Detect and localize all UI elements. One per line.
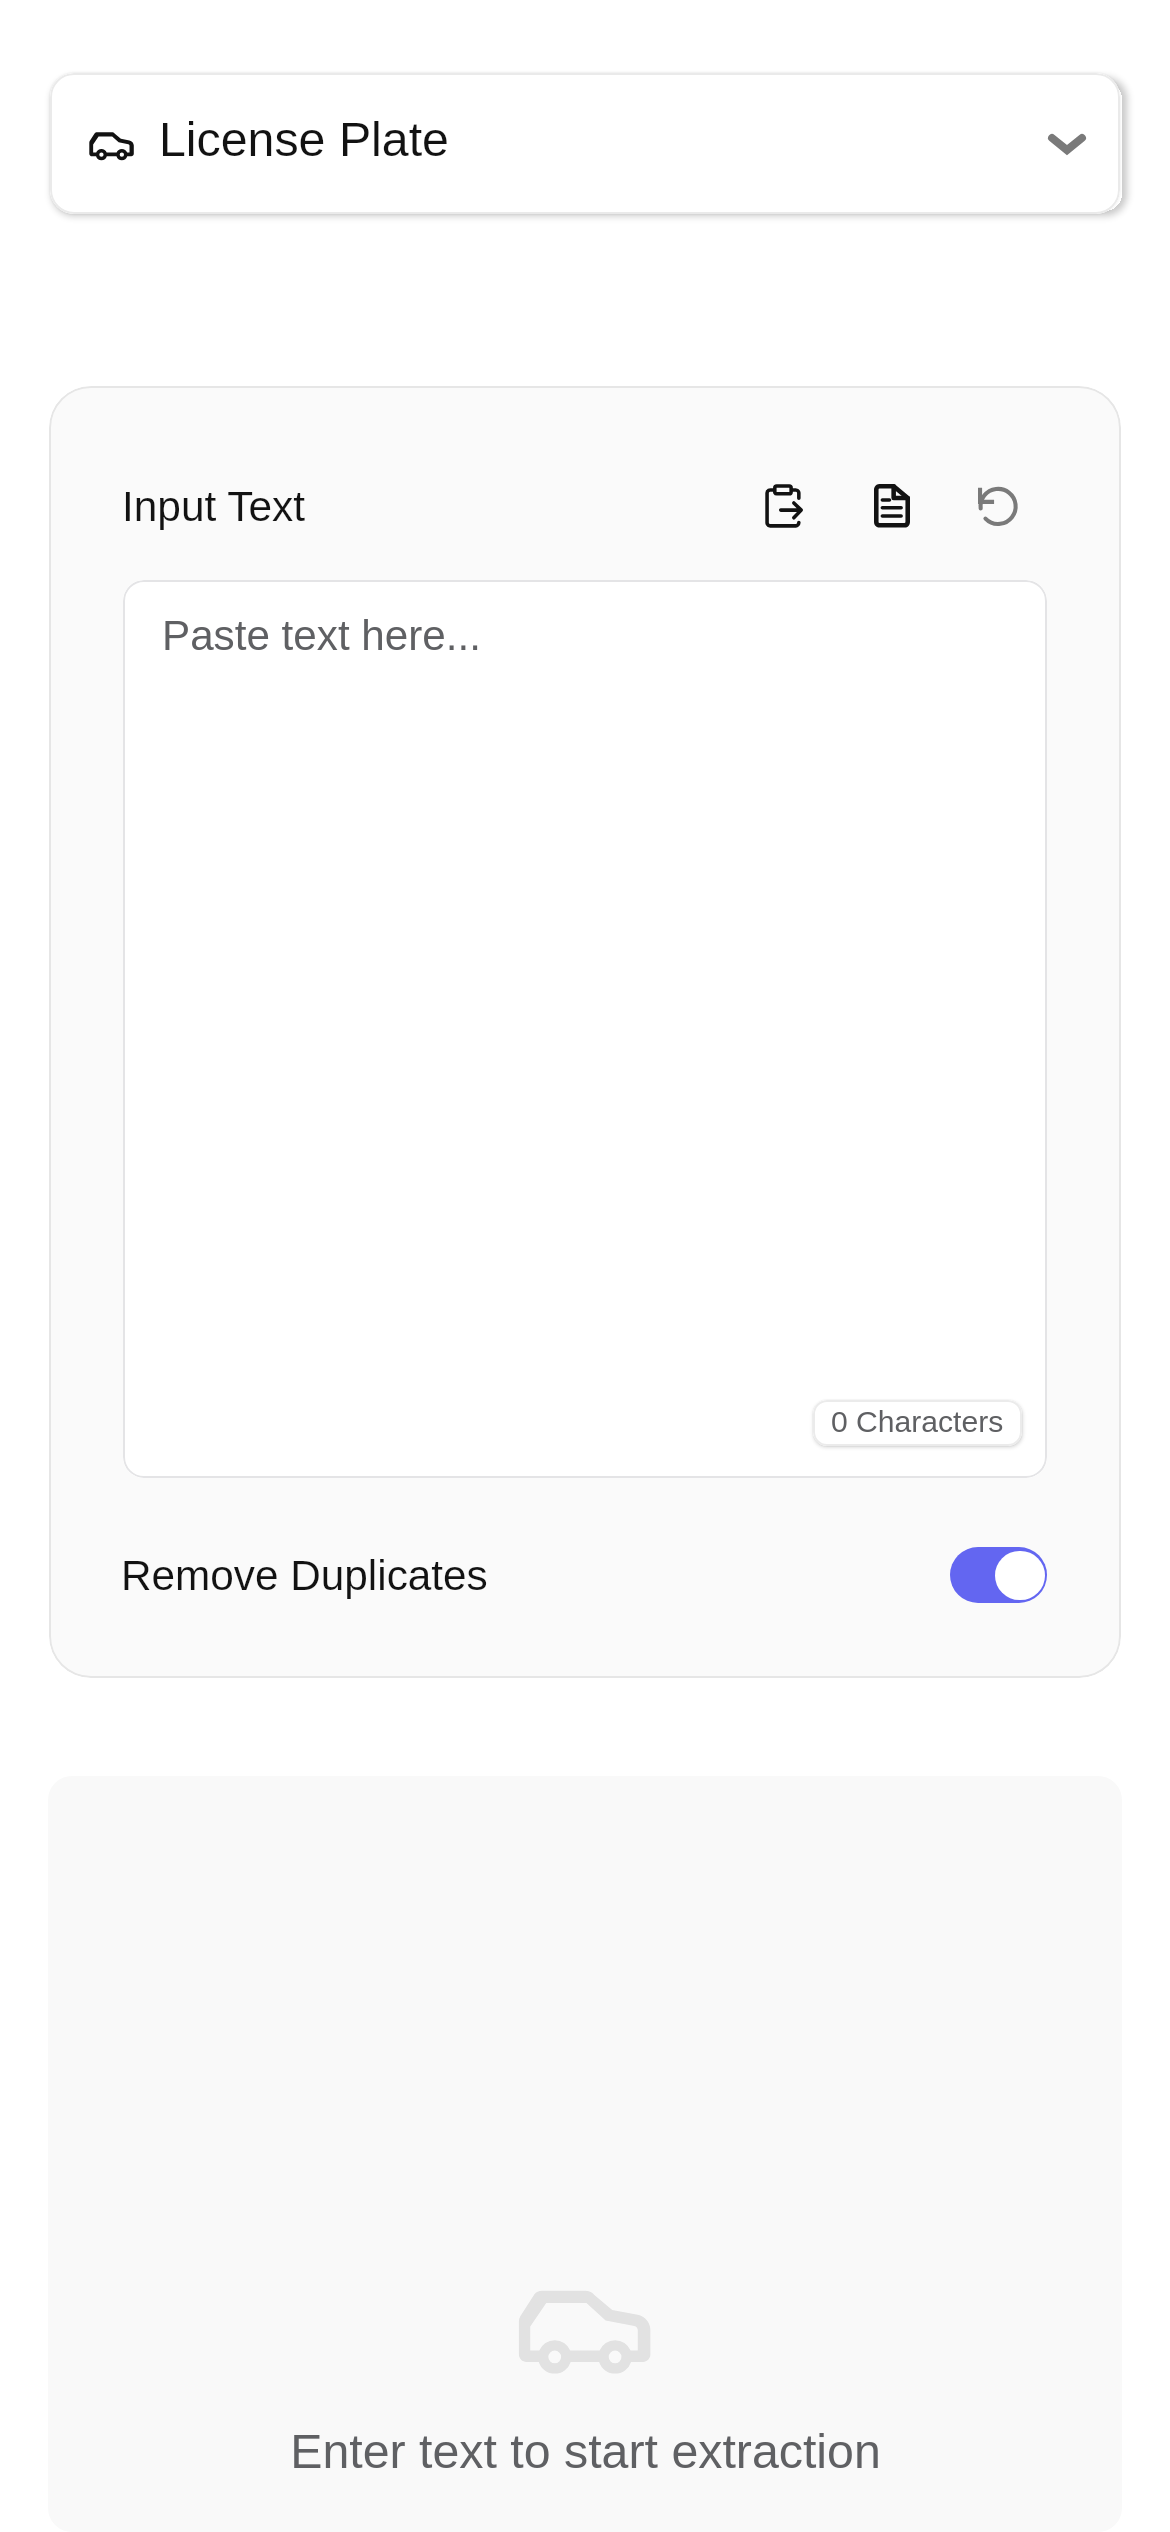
staticText: License Plate (159, 112, 449, 166)
staticText: Paste text here... (162, 612, 481, 659)
staticText: Remove Duplicates (121, 1552, 488, 1599)
button[interactable]: Remove Duplicates (121, 1527, 1047, 1623)
button[interactable]: Paste text here... (123, 580, 1047, 1478)
staticText: 0 Characters (831, 1405, 1004, 1439)
button[interactable]: Paste from clipboard (753, 475, 815, 537)
button[interactable]: Reset (967, 475, 1029, 537)
button[interactable]: Load sample text (861, 475, 923, 537)
staticText: Enter text to start extraction (290, 2424, 881, 2478)
button[interactable]: License Plate (50, 73, 1120, 214)
staticText: Input Text (122, 483, 306, 530)
